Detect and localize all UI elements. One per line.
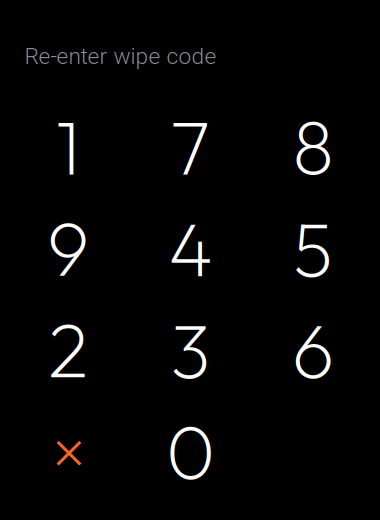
button[interactable]: 8	[252, 96, 374, 197]
button[interactable]: 5	[252, 197, 374, 299]
staticText: 8	[292, 99, 333, 193]
staticText: 0	[166, 404, 215, 498]
staticText: 9	[47, 201, 89, 295]
staticText: 7	[170, 99, 210, 193]
button[interactable]: Delete	[7, 400, 129, 502]
button[interactable]: 3	[129, 299, 252, 400]
staticText: 2	[48, 303, 88, 397]
button[interactable]: 2	[7, 299, 129, 400]
button[interactable]: 7	[129, 96, 252, 197]
button[interactable]: 1	[7, 96, 129, 197]
button[interactable]: 6	[252, 299, 374, 400]
button[interactable]: 9	[7, 197, 129, 299]
staticText: 4	[168, 201, 212, 295]
staticText: 5	[293, 201, 333, 295]
button[interactable]: 4	[129, 197, 252, 299]
staticText: Re-enter wipe code	[24, 43, 216, 70]
staticText: 1	[55, 99, 80, 193]
button[interactable]: 0	[129, 400, 252, 502]
staticText: 3	[170, 303, 210, 397]
staticText: 6	[292, 303, 334, 397]
